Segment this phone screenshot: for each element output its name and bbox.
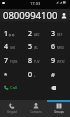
- staticText: 6: [51, 42, 56, 52]
- button[interactable]: Contacts: [24, 100, 47, 117]
- staticText: GHI: [10, 46, 16, 50]
- staticText: PQRS: [10, 60, 18, 64]
- button[interactable]: 2: [24, 27, 47, 40]
- staticText: Groups: [54, 110, 64, 114]
- staticText: Keypad: [7, 110, 17, 114]
- staticText: *: [4, 71, 8, 79]
- staticText: 5: [28, 42, 33, 52]
- staticText: Call: [10, 85, 18, 91]
- staticText: 9: [51, 56, 56, 66]
- staticText: 0800994100: [3, 9, 58, 22]
- button[interactable]: *: [0, 68, 24, 82]
- button[interactable]: 6: [47, 40, 70, 54]
- button[interactable]: 9: [47, 54, 70, 68]
- staticText: MNO: [57, 46, 65, 50]
- staticText: 0: [28, 70, 33, 80]
- button[interactable]: 0: [24, 68, 47, 82]
- staticText: ABC: [34, 33, 40, 37]
- button[interactable]: 1: [0, 27, 24, 40]
- button[interactable]: 5: [24, 40, 47, 54]
- staticText: 7: [4, 56, 9, 66]
- staticText: 2: [28, 29, 33, 39]
- button[interactable]: Backspace: [47, 79, 70, 96]
- staticText: DEF: [57, 33, 63, 37]
- button[interactable]: Add to contacts: [57, 9, 70, 22]
- button[interactable]: #: [47, 68, 70, 82]
- button[interactable]: Keypad: [0, 100, 24, 117]
- staticText: TUV: [34, 60, 40, 64]
- staticText: 8: [28, 56, 33, 66]
- staticText: 17:03: [30, 1, 41, 6]
- staticText: 4: [4, 42, 9, 52]
- button[interactable]: Call: [0, 79, 23, 96]
- button[interactable]: 3: [47, 27, 70, 40]
- staticText: +: [34, 74, 36, 78]
- staticText: Contacts: [30, 110, 42, 114]
- staticText: 1: [4, 29, 9, 39]
- staticText: JKL: [34, 46, 39, 50]
- staticText: 3: [51, 29, 56, 39]
- button[interactable]: 7: [0, 54, 24, 68]
- staticText: WXYZ: [57, 60, 65, 64]
- staticText: #: [51, 71, 55, 79]
- button[interactable]: Groups: [47, 100, 70, 117]
- button[interactable]: 8: [24, 54, 47, 68]
- button[interactable]: 4: [0, 40, 24, 54]
